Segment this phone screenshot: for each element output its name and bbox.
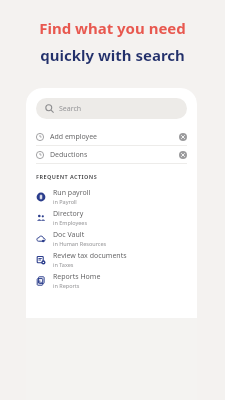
staticText: FREQUENT ACTIONS [36, 173, 98, 180]
button[interactable]: Remove Deductions [179, 151, 187, 159]
button[interactable]: Search [36, 98, 187, 119]
button[interactable]: Review tax documents [26, 249, 197, 270]
staticText: Doc Vault [53, 230, 85, 240]
staticText: Search [59, 104, 82, 114]
staticText: in Human Resources [53, 240, 107, 247]
staticText: Review tax documents [53, 251, 127, 261]
button[interactable]: Reports Home [26, 270, 197, 291]
staticText: quickly with search [40, 45, 185, 65]
staticText: Run payroll [53, 188, 91, 198]
button[interactable]: Directory [26, 207, 197, 228]
button[interactable]: Add employee [26, 128, 197, 145]
staticText: in Taxes [53, 261, 74, 268]
staticText: in Payroll [53, 198, 77, 205]
button[interactable]: Deductions [26, 146, 197, 163]
staticText: in Reports [53, 282, 80, 289]
button[interactable]: Doc Vault [26, 228, 197, 249]
staticText: Directory [53, 209, 84, 219]
staticText: Deductions [50, 150, 88, 160]
staticText: Add employee [50, 132, 98, 142]
button[interactable]: Run payroll [26, 186, 197, 207]
staticText: in Employees [53, 219, 88, 226]
staticText: Find what you need [39, 18, 186, 38]
button[interactable]: Remove Add employee [179, 133, 187, 141]
staticText: Reports Home [53, 272, 101, 282]
